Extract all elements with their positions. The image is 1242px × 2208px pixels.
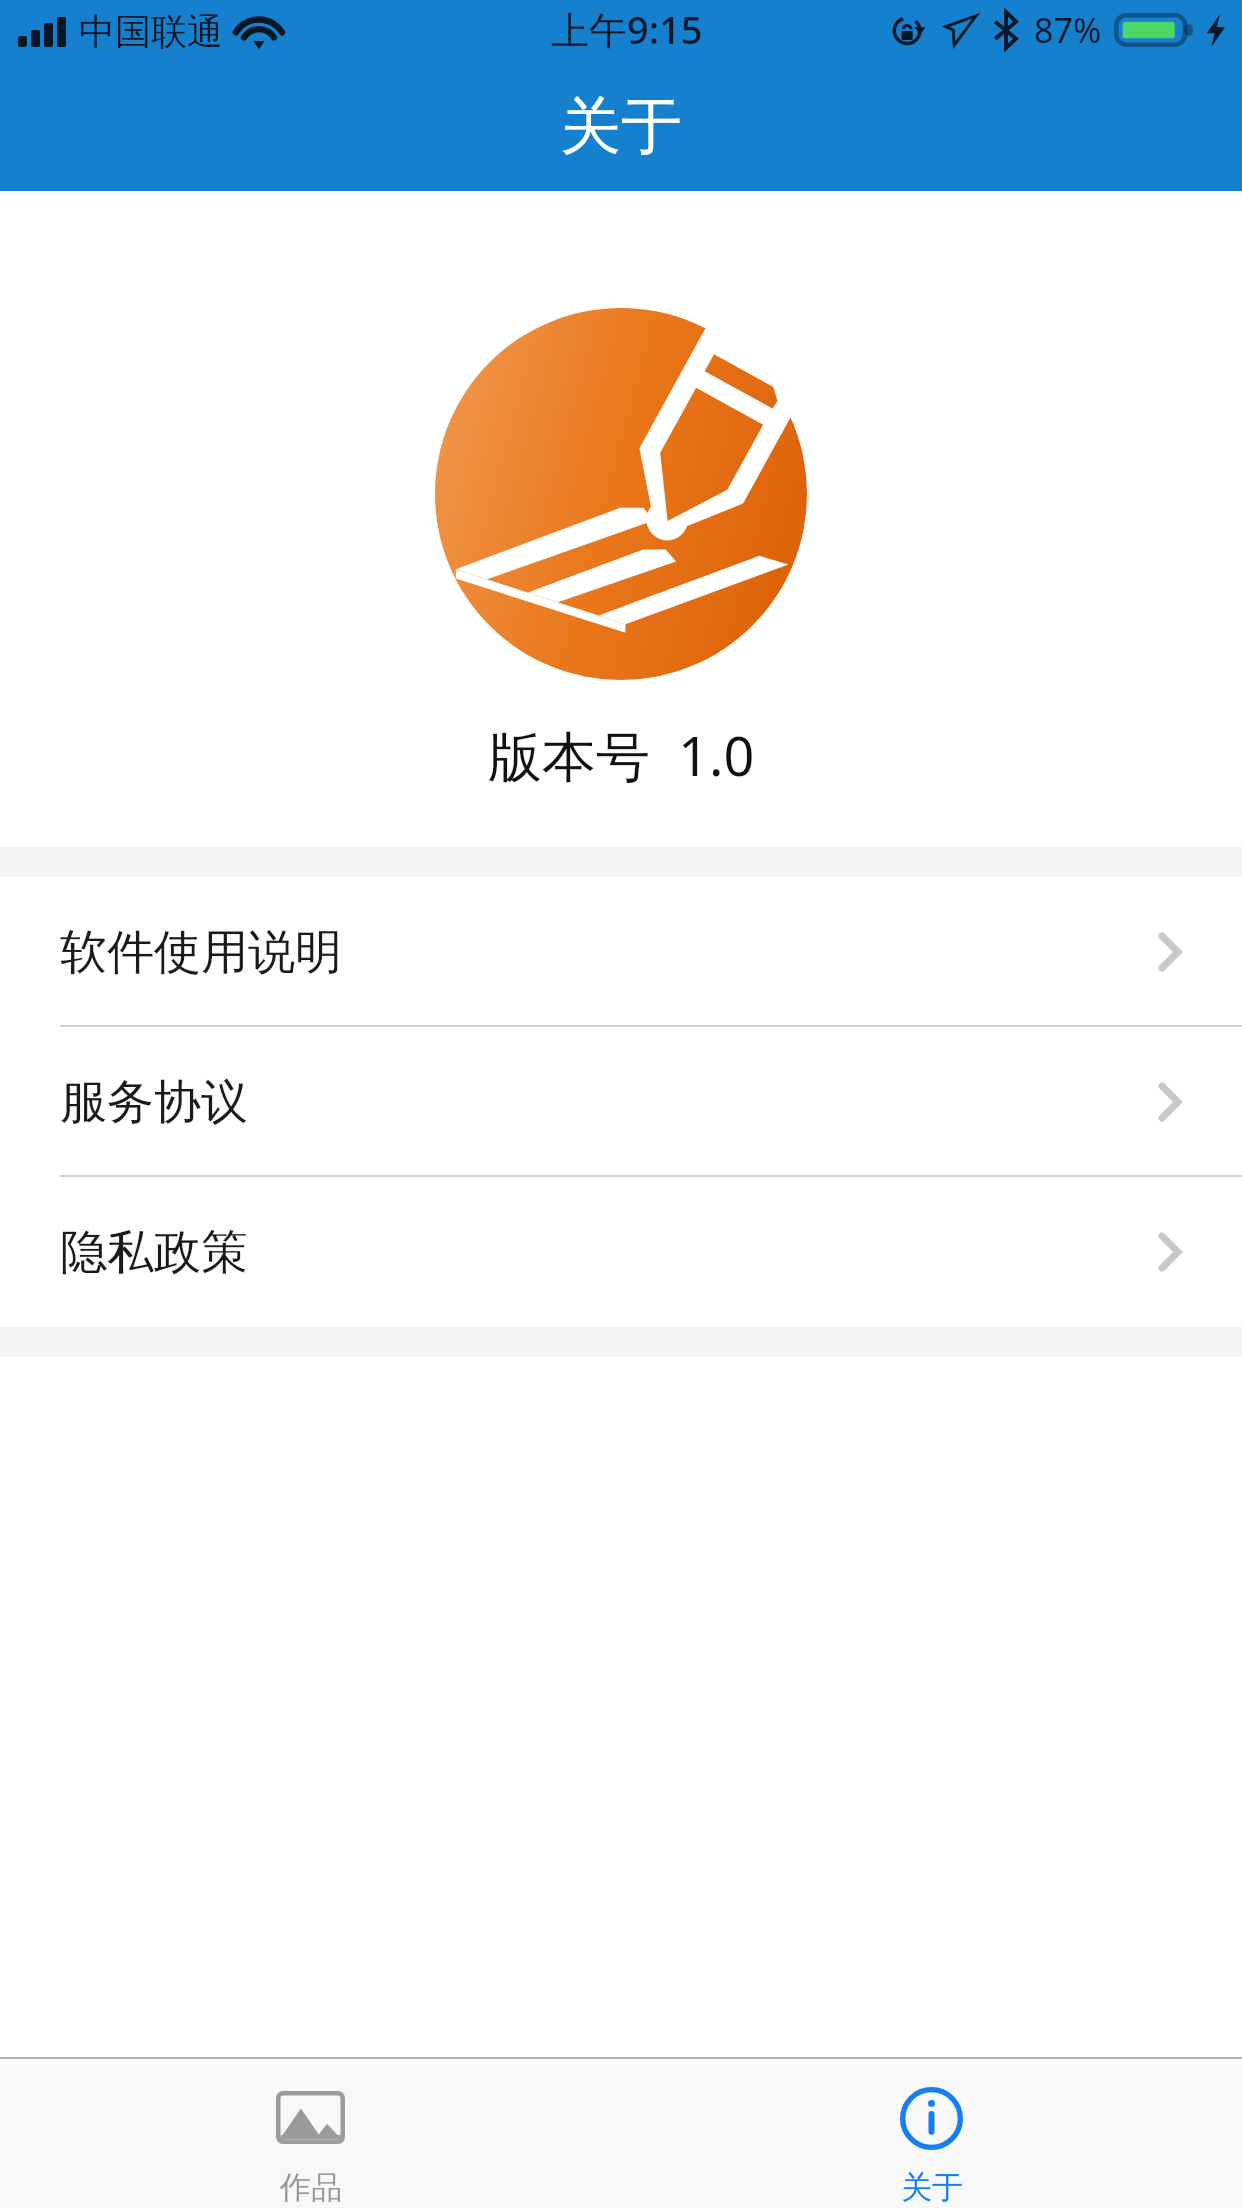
button[interactable]: 关于 [621,2059,1242,2208]
staticText: 服务协议 [60,1073,248,1132]
staticText: 版本号 1.0 [488,718,755,792]
staticText: 作品 [280,2168,342,2207]
button[interactable]: 作品 [0,2059,621,2208]
other: 作品 [276,2091,345,2144]
staticText: 上午9:15 [551,3,703,55]
staticText: 关于 [901,2168,963,2207]
button[interactable]: 软件使用说明 [0,877,1242,1027]
button[interactable]: 隐私政策 [0,1177,1242,1327]
button[interactable]: 服务协议 [0,1027,1242,1177]
staticText: 关于 [560,88,682,165]
other: 关于 [900,2087,963,2150]
staticText: 中国联通 [79,9,223,54]
staticText: 隐私政策 [60,1223,248,1282]
staticText: 87% [1034,7,1102,53]
staticText: 软件使用说明 [60,923,342,982]
